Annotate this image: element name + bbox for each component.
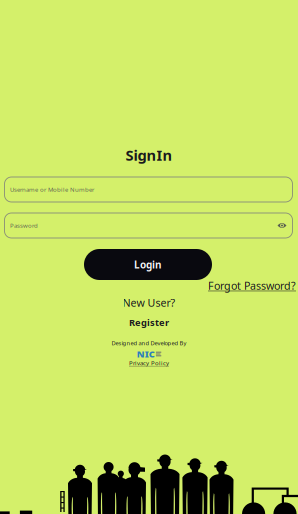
staticText: New User? bbox=[122, 295, 175, 310]
staticText: Register bbox=[129, 316, 169, 329]
staticText: Designed and Developed By bbox=[111, 339, 186, 347]
staticText: Privacy Policy bbox=[129, 359, 169, 367]
button[interactable]: Privacy Policy bbox=[0, 360, 298, 366]
staticText: Password bbox=[10, 221, 38, 230]
staticText: Username or Mobile Number bbox=[10, 185, 94, 194]
button[interactable]: Register bbox=[0, 317, 298, 328]
staticText: SignIn bbox=[125, 145, 172, 165]
staticText: NIC bbox=[137, 348, 155, 360]
staticText: Forgot Password? bbox=[208, 278, 296, 293]
button[interactable]: Forgot Password? bbox=[196, 279, 296, 292]
button[interactable]: Login bbox=[84, 249, 212, 280]
staticText: Login bbox=[134, 258, 162, 271]
